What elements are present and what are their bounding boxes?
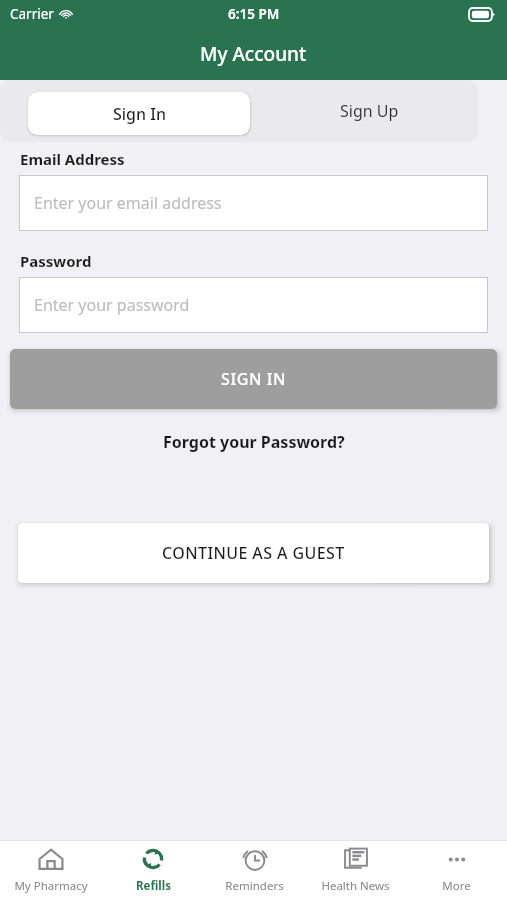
staticText: Refills — [136, 878, 171, 894]
button[interactable]: CONTINUE AS A GUEST — [18, 523, 489, 583]
staticText: Enter your email address — [34, 192, 222, 214]
staticText: SIGN IN — [221, 368, 286, 390]
staticText: My Account — [200, 41, 307, 67]
staticText: Enter your password — [34, 294, 190, 316]
staticText: Sign Up — [340, 100, 399, 122]
button[interactable]: Health News — [305, 840, 406, 900]
button[interactable]: SIGN IN — [10, 349, 497, 409]
button[interactable]: Forgot your Password? — [0, 431, 507, 453]
staticText: More — [442, 878, 471, 894]
button[interactable]: Reminders — [204, 840, 305, 900]
staticText: Forgot your Password? — [163, 431, 345, 453]
staticText: 6:15 PM — [228, 5, 280, 23]
staticText: Health News — [321, 878, 390, 894]
button[interactable]: Sign In — [28, 92, 250, 135]
staticText: My Pharmacy — [14, 878, 88, 894]
button[interactable]: Enter your password — [19, 277, 488, 333]
staticText: Email Address — [20, 149, 125, 169]
button[interactable]: More — [406, 840, 507, 900]
staticText: Sign In — [113, 103, 166, 125]
staticText: Carrier — [10, 5, 54, 23]
button[interactable]: My Pharmacy — [0, 840, 102, 900]
staticText: CONTINUE AS A GUEST — [162, 542, 345, 564]
button[interactable]: Refills — [102, 840, 204, 900]
button[interactable]: Sign Up — [250, 80, 507, 142]
staticText: Reminders — [225, 878, 284, 894]
button[interactable]: Enter your email address — [19, 175, 488, 231]
staticText: Password — [20, 251, 92, 271]
